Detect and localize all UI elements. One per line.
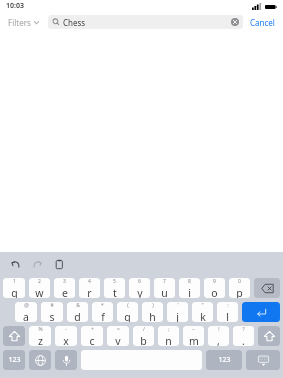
button[interactable]: Redo bbox=[28, 255, 46, 273]
button[interactable]: # bbox=[41, 302, 63, 322]
staticText: ? bbox=[242, 326, 245, 333]
staticText: ; bbox=[168, 326, 170, 333]
staticText: r bbox=[87, 286, 92, 298]
staticText: x bbox=[63, 334, 69, 346]
staticText: 7 bbox=[163, 278, 166, 285]
staticText: ( bbox=[127, 302, 129, 309]
staticText: g bbox=[124, 310, 131, 322]
button[interactable]: Filters bbox=[6, 15, 42, 30]
staticText: 9 bbox=[213, 278, 216, 285]
button[interactable]: Change keyboard bbox=[29, 350, 51, 370]
staticText: 2 bbox=[38, 278, 41, 285]
button[interactable]: ? bbox=[233, 326, 254, 346]
button[interactable]: 5 bbox=[104, 278, 125, 298]
staticText: h bbox=[149, 310, 156, 322]
staticText: Chess bbox=[63, 17, 86, 28]
staticText: 1 bbox=[13, 278, 16, 285]
button[interactable]: ( bbox=[117, 302, 138, 322]
staticText: i bbox=[188, 286, 191, 298]
staticText: 5 bbox=[113, 278, 116, 285]
button[interactable]: Backspace bbox=[254, 278, 280, 298]
button[interactable]: 4 bbox=[79, 278, 100, 298]
staticText: w bbox=[35, 286, 44, 298]
button[interactable]: % bbox=[29, 326, 51, 346]
staticText: d bbox=[74, 310, 81, 322]
staticText: 8 bbox=[188, 278, 191, 285]
staticText: @ bbox=[24, 302, 29, 309]
button[interactable]: ~ bbox=[183, 326, 204, 346]
staticText: z bbox=[38, 334, 43, 346]
button[interactable]: ' bbox=[167, 302, 188, 322]
button[interactable]: Shift bbox=[3, 326, 25, 346]
button[interactable]: 3 bbox=[54, 278, 75, 298]
staticText: n bbox=[165, 334, 172, 346]
button[interactable]: Return bbox=[242, 302, 280, 322]
staticText: Cancel bbox=[250, 17, 275, 28]
staticText: o bbox=[211, 286, 218, 298]
staticText: ' bbox=[177, 302, 179, 309]
staticText: ! bbox=[218, 326, 220, 333]
staticText: " bbox=[201, 302, 204, 309]
button[interactable]: 2 bbox=[29, 278, 50, 298]
staticText: u bbox=[161, 286, 168, 298]
button[interactable]: 7 bbox=[154, 278, 175, 298]
button[interactable]: ) bbox=[142, 302, 163, 322]
button[interactable]: 123 bbox=[206, 350, 242, 370]
button[interactable]: 9 bbox=[204, 278, 225, 298]
button[interactable]: Undo bbox=[6, 255, 24, 273]
button[interactable]: = bbox=[107, 326, 129, 346]
staticText: c bbox=[89, 334, 95, 346]
button[interactable]: * bbox=[92, 302, 113, 322]
button[interactable]: @ bbox=[15, 302, 37, 322]
staticText: & bbox=[76, 302, 80, 309]
button[interactable]: 1 bbox=[3, 278, 25, 298]
staticText: . bbox=[242, 334, 245, 346]
staticText: 6 bbox=[138, 278, 141, 285]
button[interactable]: 0 bbox=[229, 278, 250, 298]
button[interactable]: & bbox=[67, 302, 88, 322]
staticText: 0 bbox=[238, 278, 241, 285]
button[interactable]: Paste bbox=[50, 255, 68, 273]
button[interactable]: Clear search bbox=[231, 18, 239, 26]
button[interactable]: - bbox=[55, 326, 77, 346]
button[interactable]: ! bbox=[208, 326, 229, 346]
button[interactable]: Dictate bbox=[55, 350, 77, 370]
button[interactable]: 123 bbox=[3, 350, 25, 370]
staticText: ) bbox=[152, 302, 154, 309]
staticText: q bbox=[11, 286, 18, 298]
button[interactable]: : bbox=[217, 302, 238, 322]
staticText: t bbox=[113, 286, 117, 298]
staticText: 3 bbox=[63, 278, 66, 285]
staticText: ~ bbox=[192, 326, 195, 333]
button[interactable]: 6 bbox=[129, 278, 150, 298]
button[interactable]: 8 bbox=[179, 278, 200, 298]
staticText: + bbox=[91, 326, 94, 333]
staticText: 4 bbox=[88, 278, 91, 285]
staticText: - bbox=[65, 326, 67, 333]
button[interactable]: Chess bbox=[48, 15, 243, 29]
button[interactable]: Shift bbox=[258, 326, 280, 346]
button[interactable]: / bbox=[133, 326, 154, 346]
staticText: 123 bbox=[8, 355, 21, 365]
staticText: l bbox=[226, 310, 229, 322]
staticText: j bbox=[176, 310, 179, 322]
staticText: m bbox=[189, 334, 199, 346]
button[interactable]: + bbox=[81, 326, 103, 346]
staticText: s bbox=[49, 310, 55, 322]
staticText: p bbox=[236, 286, 243, 298]
staticText: v bbox=[115, 334, 121, 346]
staticText: 123 bbox=[218, 355, 231, 365]
button[interactable]: " bbox=[192, 302, 213, 322]
button[interactable]: ; bbox=[158, 326, 179, 346]
staticText: k bbox=[200, 310, 206, 322]
staticText: f bbox=[101, 310, 105, 322]
staticText: : bbox=[227, 302, 229, 309]
staticText: b bbox=[140, 334, 147, 346]
staticText: , bbox=[217, 334, 220, 346]
staticText: e bbox=[62, 286, 68, 298]
button[interactable]: Cancel bbox=[248, 15, 277, 30]
staticText: a bbox=[23, 310, 29, 322]
button[interactable]: Hide keyboard bbox=[246, 350, 280, 370]
staticText: Filters bbox=[8, 17, 31, 28]
